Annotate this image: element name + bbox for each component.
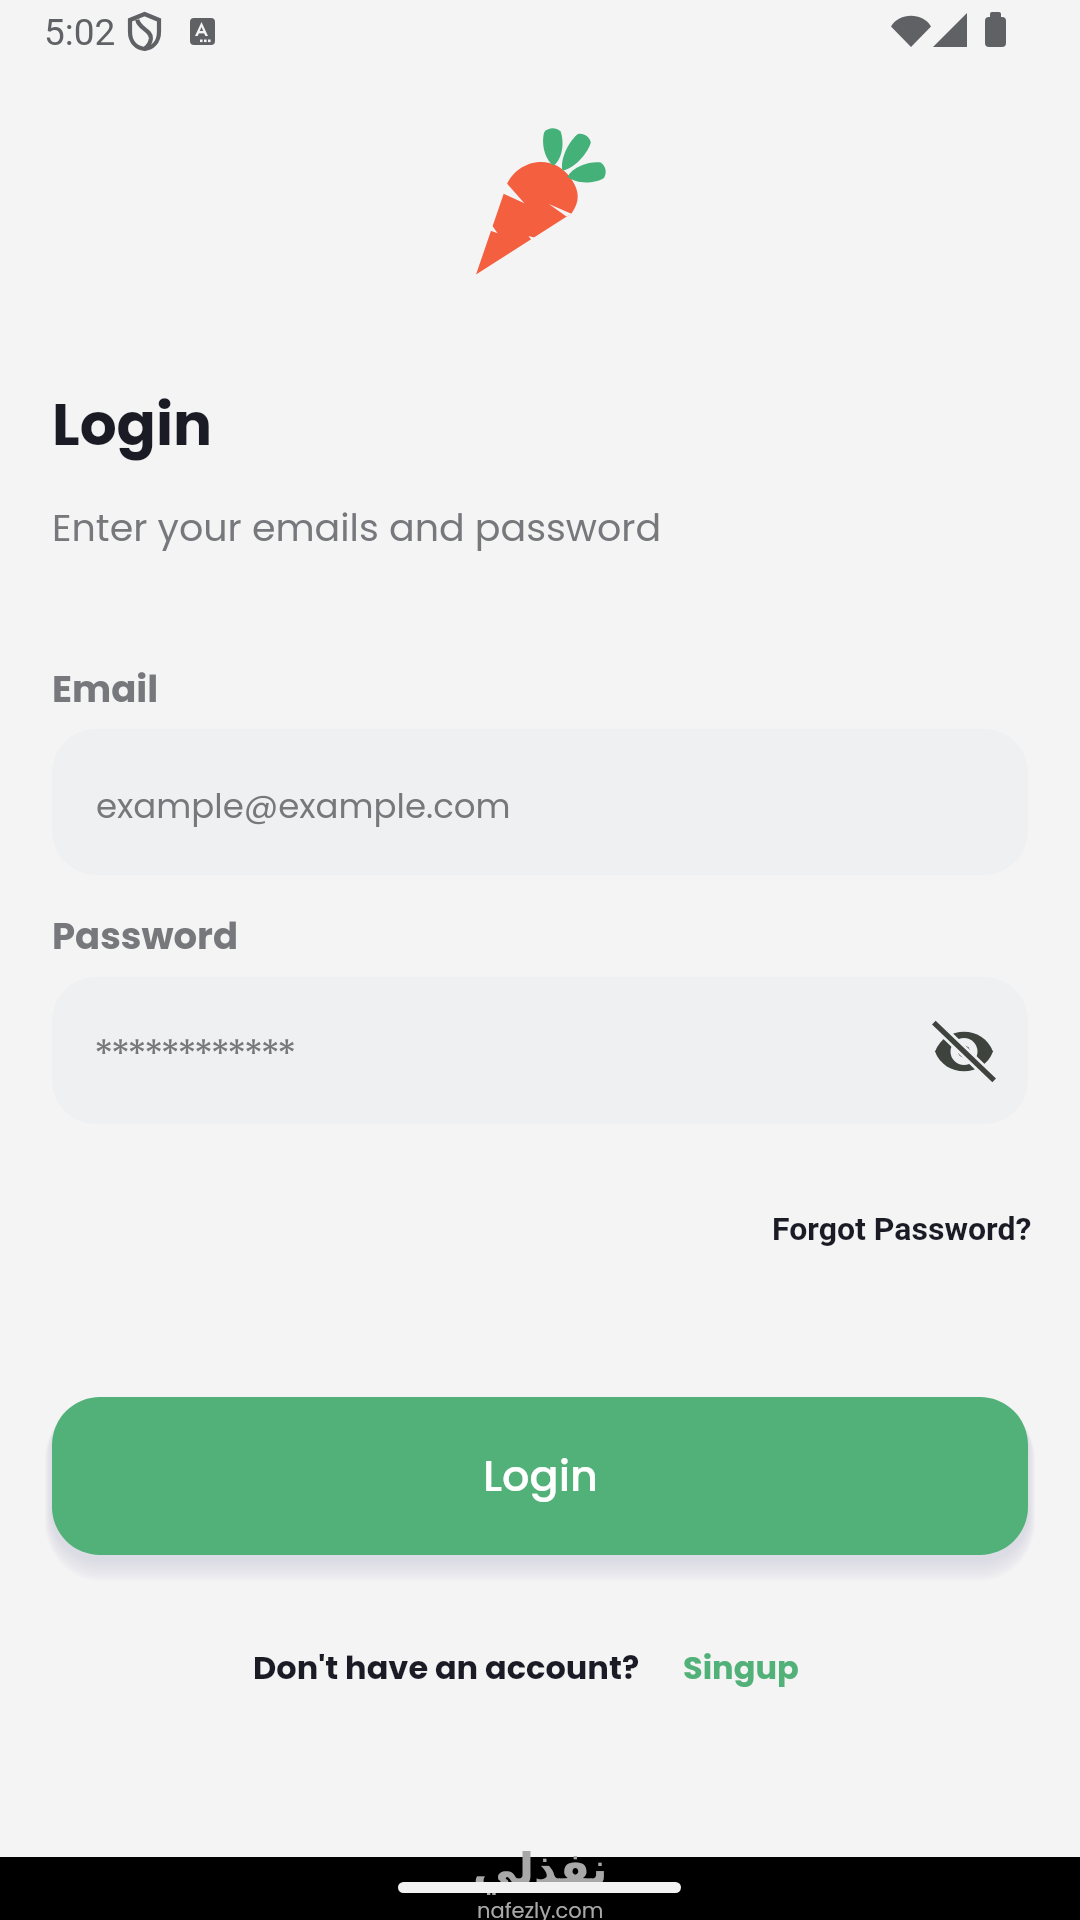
staticText: Don't have an account? (253, 1645, 640, 1690)
staticText: Enter your emails and password (52, 501, 662, 554)
button[interactable]: ************ (52, 977, 1028, 1124)
staticText: Forgot Password? (772, 1210, 1032, 1248)
staticText: Login (483, 1446, 598, 1506)
button[interactable]: Show password (916, 1003, 1012, 1099)
staticText: Email (52, 663, 159, 715)
button[interactable]: Forgot Password? (768, 1197, 1036, 1261)
staticText: Login (52, 384, 213, 465)
staticText: Password (52, 910, 239, 962)
button[interactable]: example@example.com (52, 729, 1028, 875)
staticText: نفذلي (473, 1843, 608, 1894)
button[interactable]: Singup (668, 1635, 814, 1699)
staticText: ************ (94, 1026, 294, 1082)
staticText: 5:02 (44, 11, 116, 54)
staticText: example@example.com (96, 782, 511, 830)
staticText: nafezly.com (477, 1896, 604, 1920)
staticText: Singup (683, 1645, 799, 1690)
button[interactable]: Login (52, 1397, 1028, 1555)
